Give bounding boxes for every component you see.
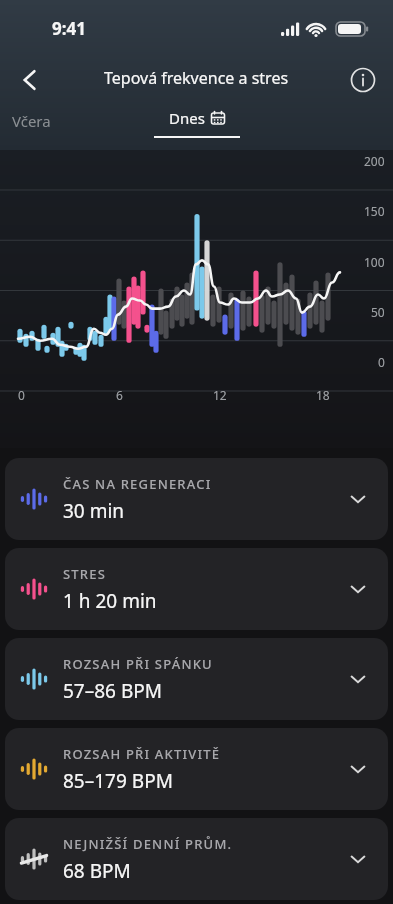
staticText: 68 BPM	[63, 858, 131, 884]
staticText: 6	[116, 387, 123, 403]
button[interactable]: Expand	[340, 571, 376, 607]
staticText: 150	[364, 203, 385, 219]
staticText: ROZSAH PŘI SPÁNKU	[63, 655, 213, 673]
button[interactable]: Expand	[340, 481, 376, 517]
staticText: 50	[371, 304, 385, 320]
button[interactable]: Back	[8, 58, 52, 102]
button[interactable]: Info	[341, 58, 385, 102]
staticText: STRES	[63, 565, 107, 583]
button[interactable]: ROZSAH PŘI AKTIVITĚ	[5, 728, 388, 810]
staticText: NEJNIŽŠÍ DENNÍ PRŮM.	[63, 835, 233, 853]
staticText: Dnes	[169, 108, 205, 128]
staticText: 57–86 BPM	[63, 678, 162, 704]
staticText: 12	[213, 387, 227, 403]
staticText: 100	[364, 254, 385, 270]
button[interactable]: NEJNIŽŠÍ DENNÍ PRŮM.	[5, 818, 388, 900]
staticText: 200	[364, 153, 385, 169]
button[interactable]: Expand	[340, 751, 376, 787]
staticText: 1 h 20 min	[63, 588, 157, 614]
button[interactable]: ČAS NA REGENERACI	[5, 458, 388, 540]
staticText: Tepová frekvence a stres	[104, 67, 289, 89]
staticText: 9:41	[52, 17, 86, 40]
button[interactable]: Dnes	[154, 108, 240, 138]
staticText: ROZSAH PŘI AKTIVITĚ	[63, 745, 221, 763]
staticText: 30 min	[63, 498, 125, 524]
staticText: 85–179 BPM	[63, 768, 173, 794]
button[interactable]: Včera	[10, 111, 53, 131]
button[interactable]: STRES	[5, 548, 388, 630]
button[interactable]: ROZSAH PŘI SPÁNKU	[5, 638, 388, 720]
button[interactable]: Expand	[340, 841, 376, 877]
staticText: 18	[316, 387, 330, 403]
staticText: ČAS NA REGENERACI	[63, 475, 212, 493]
staticText: 0	[378, 354, 385, 370]
button[interactable]: Expand	[340, 661, 376, 697]
staticText: 0	[18, 387, 25, 403]
